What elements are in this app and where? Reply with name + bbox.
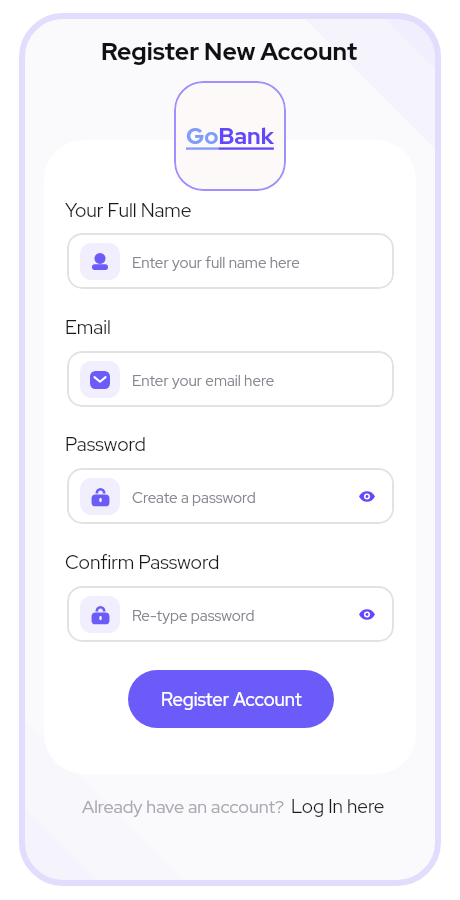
button[interactable]: Show password [359,608,375,621]
staticText: Enter your full name here [132,253,300,273]
staticText: Confirm Password [65,549,220,574]
staticText: Register Account [161,687,302,711]
button[interactable]: Re-type password [67,586,394,642]
staticText: Enter your email here [132,371,275,391]
staticText: Register New Account [101,35,358,67]
button[interactable]: Enter your full name here [67,233,394,289]
staticText: Create a password [132,488,256,508]
button[interactable]: Create a password [67,468,394,524]
staticText: Password [65,431,146,456]
staticText: Log In here [291,794,385,819]
button[interactable]: Log In here [291,794,385,819]
staticText: Already have an account? [82,795,285,819]
staticText: Re-type password [132,606,255,626]
staticText: Your Full Name [65,197,192,222]
button[interactable]: Show password [359,490,375,503]
staticText: GoBank [186,121,274,151]
button[interactable]: Register Account [128,670,334,728]
button[interactable]: Enter your email here [67,351,394,407]
staticText: Email [65,314,111,339]
